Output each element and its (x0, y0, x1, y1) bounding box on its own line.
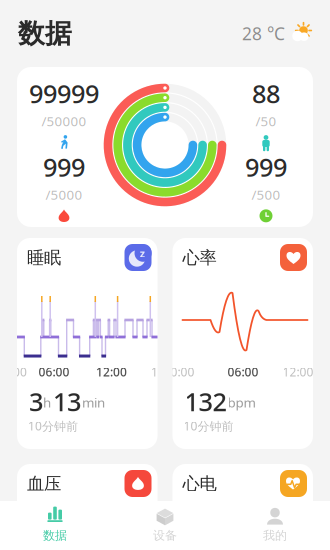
staticText: 06:00 (227, 364, 258, 380)
staticText: 999 (43, 150, 85, 184)
staticText: 心率 (182, 247, 216, 268)
staticText: 00:00 (163, 364, 194, 380)
staticText: 数据 (43, 528, 67, 543)
staticText: 10分钟前 (183, 418, 233, 434)
staticText: 13 (53, 384, 81, 418)
staticText: /50000 (41, 112, 86, 130)
staticText: /500 (251, 186, 280, 203)
button[interactable]: 设备 (110, 501, 220, 550)
staticText: 睡眠 (27, 247, 61, 268)
staticText: bpm (227, 393, 255, 411)
staticText: 心电 (182, 473, 216, 494)
staticText: 88 (252, 77, 280, 110)
button[interactable]: 我的 (220, 501, 330, 550)
staticText: /5000 (45, 186, 82, 203)
staticText: --- --- (28, 496, 55, 512)
staticText: h (43, 393, 51, 411)
staticText: 我的 (263, 528, 287, 543)
staticText: 12:00 (282, 364, 313, 380)
staticText: 3 (29, 384, 43, 418)
staticText: 血压 (27, 473, 61, 494)
staticText: 99999 (29, 77, 99, 110)
button[interactable]: 数据 (0, 501, 110, 550)
staticText: z (140, 246, 145, 260)
staticText: 10分钟前 (28, 418, 78, 434)
staticText: 28 °C (242, 22, 285, 45)
staticText: 12:00 (96, 364, 127, 380)
staticText: min (82, 393, 105, 411)
staticText: 设备 (153, 528, 177, 543)
staticText: 数据 (18, 17, 72, 50)
staticText: 00:00 (0, 364, 27, 380)
staticText: 18:00 (151, 364, 182, 380)
staticText: 999 (245, 150, 287, 184)
staticText: 132 (184, 384, 226, 418)
staticText: /50 (255, 112, 276, 130)
staticText: 06:00 (38, 364, 69, 380)
